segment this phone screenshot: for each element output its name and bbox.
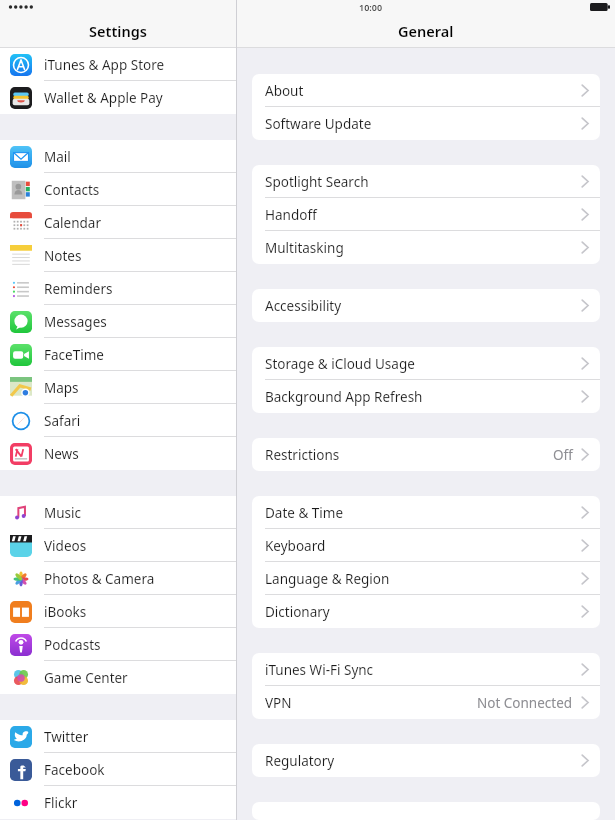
button[interactable]: FaceTime bbox=[0, 338, 236, 371]
button[interactable]: Game Center bbox=[0, 661, 236, 694]
button[interactable]: Photos & Camera bbox=[0, 562, 236, 595]
button[interactable]: iTunes Wi-Fi Sync bbox=[252, 653, 600, 686]
button[interactable]: Language & Region bbox=[252, 562, 600, 595]
button[interactable]: iBooks bbox=[0, 595, 236, 628]
staticText: Keyboard bbox=[265, 537, 326, 555]
button[interactable]: VPN bbox=[252, 686, 600, 719]
button[interactable]: Background App Refresh bbox=[252, 380, 600, 413]
button[interactable]: Storage & iCloud Usage bbox=[252, 347, 600, 380]
staticText: Maps bbox=[44, 379, 79, 397]
button[interactable]: News bbox=[0, 437, 236, 470]
staticText: Settings bbox=[89, 21, 147, 41]
button[interactable]: Accessibility bbox=[252, 289, 600, 322]
staticText: VPN bbox=[265, 694, 292, 712]
staticText: Software Update bbox=[265, 115, 372, 133]
staticText: Background App Refresh bbox=[265, 388, 423, 406]
staticText: 10:00 bbox=[359, 1, 383, 13]
button[interactable]: Music bbox=[0, 496, 236, 529]
button[interactable]: Twitter bbox=[0, 720, 236, 753]
staticText: Handoff bbox=[265, 206, 317, 224]
staticText: Accessibility bbox=[265, 297, 342, 315]
staticText: Messages bbox=[44, 313, 107, 331]
staticText: News bbox=[44, 445, 79, 463]
staticText: Safari bbox=[44, 412, 81, 430]
button[interactable]: Videos bbox=[0, 529, 236, 562]
staticText: Wallet & Apple Pay bbox=[44, 89, 163, 107]
button[interactable]: Spotlight Search bbox=[252, 165, 600, 198]
staticText: Videos bbox=[44, 537, 87, 555]
staticText: iTunes & App Store bbox=[44, 56, 165, 74]
button[interactable]: Podcasts bbox=[0, 628, 236, 661]
staticText: Off bbox=[553, 446, 573, 464]
staticText: Facebook bbox=[44, 761, 105, 779]
staticText: Storage & iCloud Usage bbox=[265, 355, 415, 373]
staticText: Music bbox=[44, 504, 82, 522]
button[interactable]: Handoff bbox=[252, 198, 600, 231]
button[interactable]: Messages bbox=[0, 305, 236, 338]
staticText: Photos & Camera bbox=[44, 570, 155, 588]
staticText: Notes bbox=[44, 247, 82, 265]
button[interactable]: iTunes & App Store bbox=[0, 48, 236, 81]
staticText: Game Center bbox=[44, 669, 128, 687]
button[interactable]: Reminders bbox=[0, 272, 236, 305]
staticText: Contacts bbox=[44, 181, 100, 199]
button[interactable]: Date & Time bbox=[252, 496, 600, 529]
button[interactable]: Restrictions bbox=[252, 438, 600, 471]
staticText: iBooks bbox=[44, 603, 87, 621]
staticText: Spotlight Search bbox=[265, 173, 369, 191]
button[interactable]: Contacts bbox=[0, 173, 236, 206]
staticText: Restrictions bbox=[265, 446, 340, 464]
staticText: Regulatory bbox=[265, 752, 335, 770]
button[interactable]: Flickr bbox=[0, 786, 236, 819]
staticText: Mail bbox=[44, 148, 71, 166]
button[interactable]: Maps bbox=[0, 371, 236, 404]
staticText: Date & Time bbox=[265, 504, 344, 522]
staticText: General bbox=[398, 21, 454, 41]
staticText: Multitasking bbox=[265, 239, 344, 257]
staticText: Reminders bbox=[44, 280, 113, 298]
staticText: Not Connected bbox=[477, 694, 573, 712]
button[interactable]: Regulatory bbox=[252, 744, 600, 777]
button[interactable]: Facebook bbox=[0, 753, 236, 786]
button[interactable]: Dictionary bbox=[252, 595, 600, 628]
button[interactable]: Mail bbox=[0, 140, 236, 173]
button[interactable]: Wallet & Apple Pay bbox=[0, 81, 236, 114]
staticText: FaceTime bbox=[44, 346, 104, 364]
button[interactable]: Multitasking bbox=[252, 231, 600, 264]
button[interactable]: Software Update bbox=[252, 107, 600, 140]
button[interactable]: Calendar bbox=[0, 206, 236, 239]
button[interactable]: Notes bbox=[0, 239, 236, 272]
button[interactable]: Safari bbox=[0, 404, 236, 437]
staticText: Language & Region bbox=[265, 570, 390, 588]
staticText: Flickr bbox=[44, 794, 78, 812]
staticText: Dictionary bbox=[265, 603, 330, 621]
staticText: Podcasts bbox=[44, 636, 101, 654]
staticText: Twitter bbox=[44, 728, 89, 746]
button[interactable]: Keyboard bbox=[252, 529, 600, 562]
staticText: Calendar bbox=[44, 214, 101, 232]
staticText: About bbox=[265, 82, 304, 100]
staticText: iTunes Wi-Fi Sync bbox=[265, 661, 374, 679]
button[interactable]: About bbox=[252, 74, 600, 107]
